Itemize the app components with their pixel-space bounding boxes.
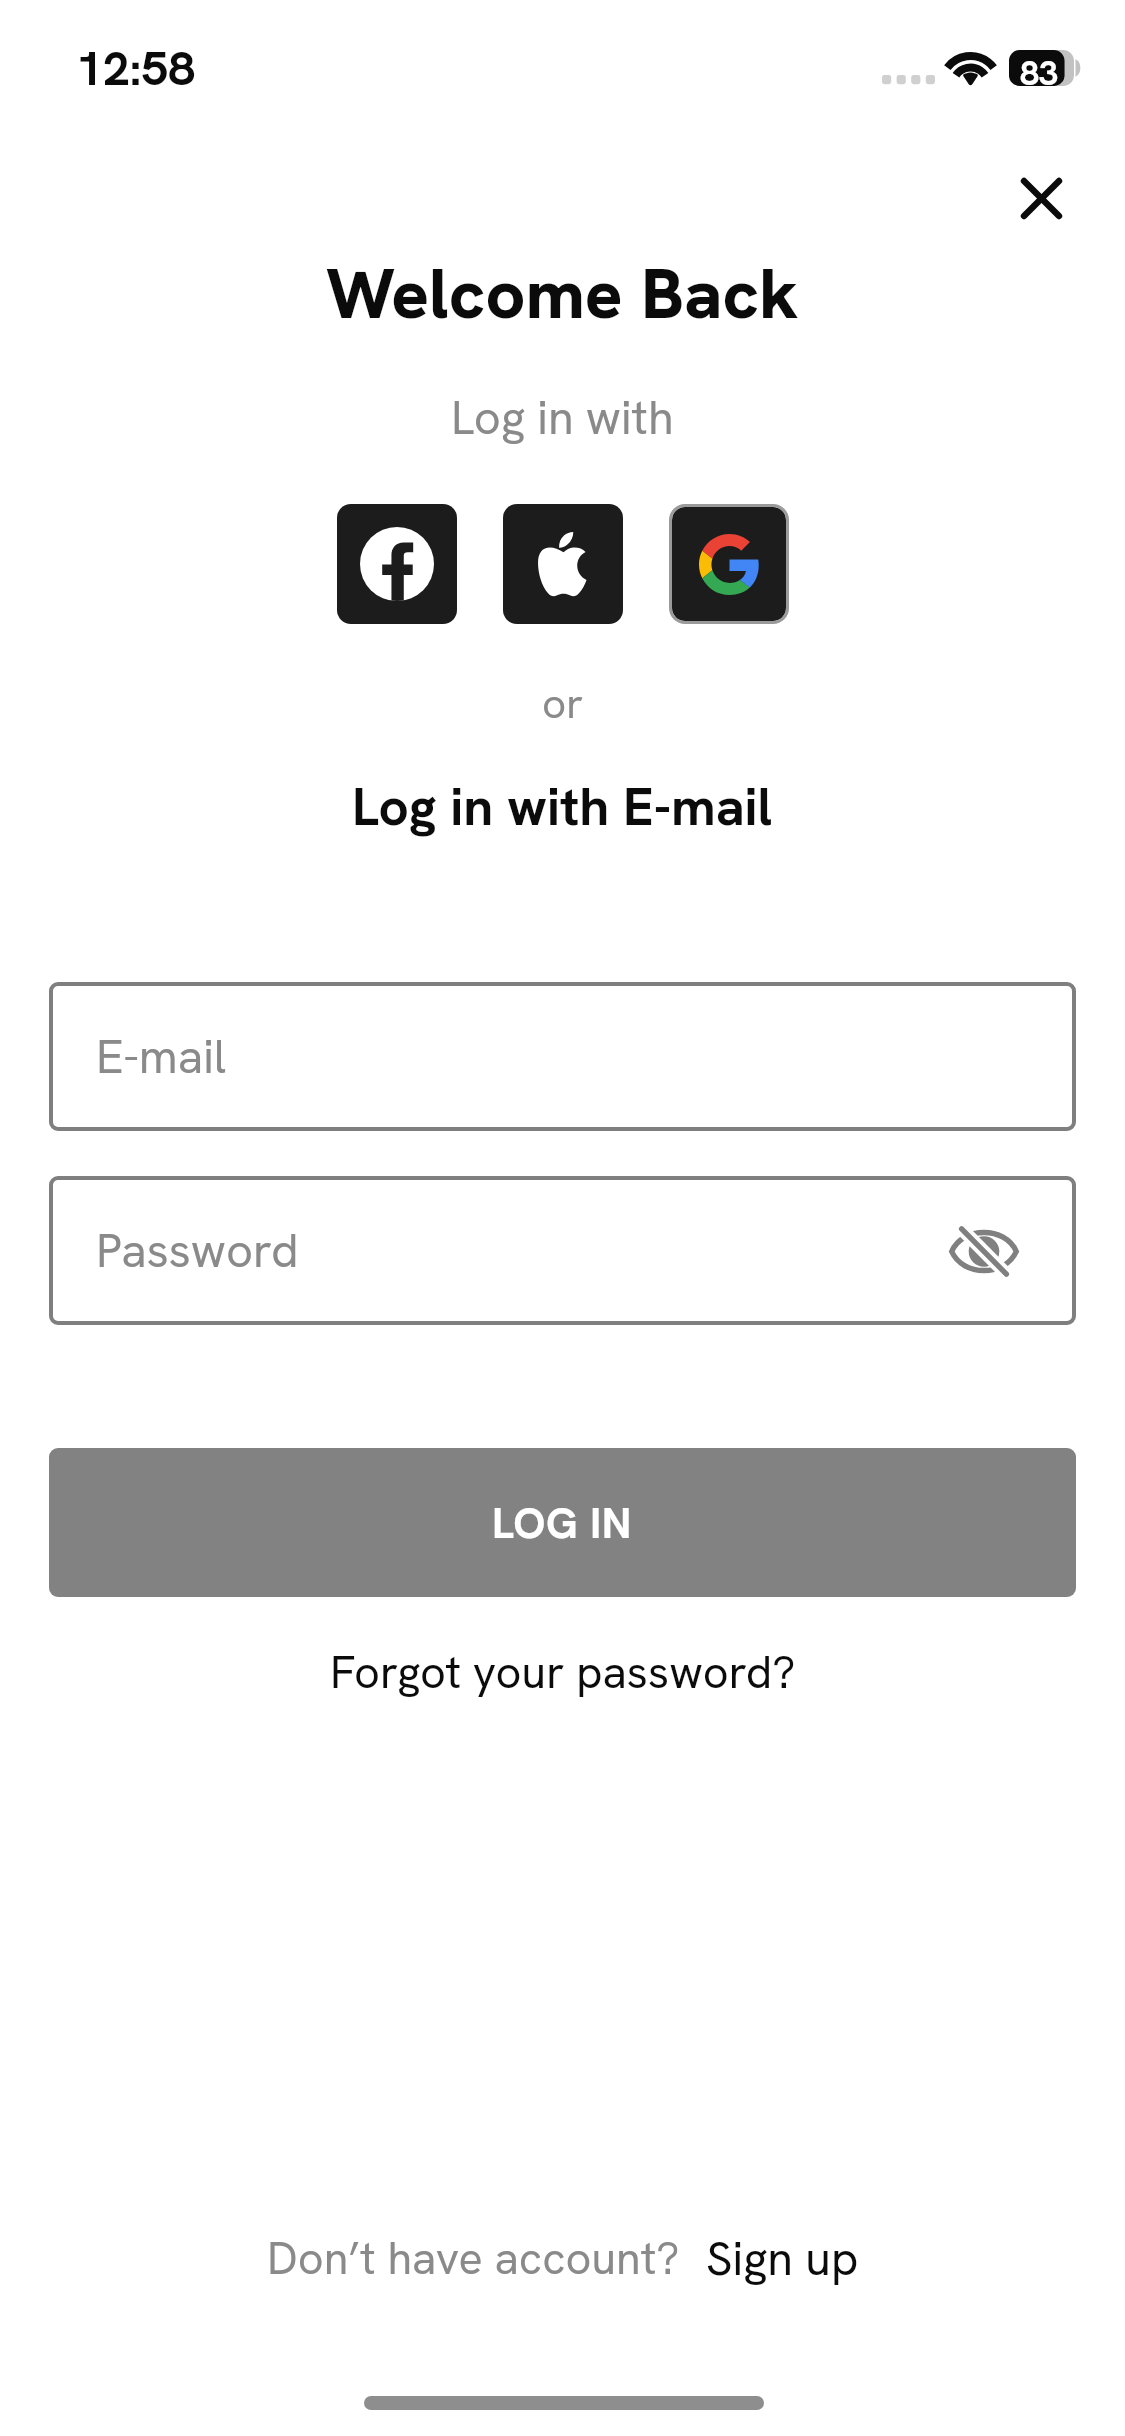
staticText: Don’t have account? [267,2229,680,2288]
button[interactable]: Password [49,1176,1076,1325]
button[interactable]: Sign up [694,2218,871,2299]
button[interactable]: E-mail [49,982,1076,1131]
staticText: Password [96,1220,299,1281]
staticText: E-mail [96,1026,227,1087]
staticText: Sign up [706,2228,859,2289]
staticText: 12:58 [76,37,196,100]
staticText: LOG IN [492,1495,633,1551]
button[interactable]: Log in with Apple [503,504,623,624]
button[interactable]: LOG IN [49,1448,1076,1597]
staticText: Forgot your password? [330,1643,796,1702]
staticText: Welcome Back [326,248,799,339]
button[interactable]: Forgot your password? [306,1635,820,1710]
staticText: Log in with [451,387,674,448]
button[interactable]: Log in with Google [672,507,786,621]
staticText: Log in with E-mail [352,772,773,841]
button[interactable]: Show password [932,1199,1036,1303]
staticText: 83 [1020,51,1059,95]
button[interactable]: Close [986,143,1096,253]
button[interactable]: Log in with Facebook [337,504,457,624]
staticText: or [542,676,584,731]
